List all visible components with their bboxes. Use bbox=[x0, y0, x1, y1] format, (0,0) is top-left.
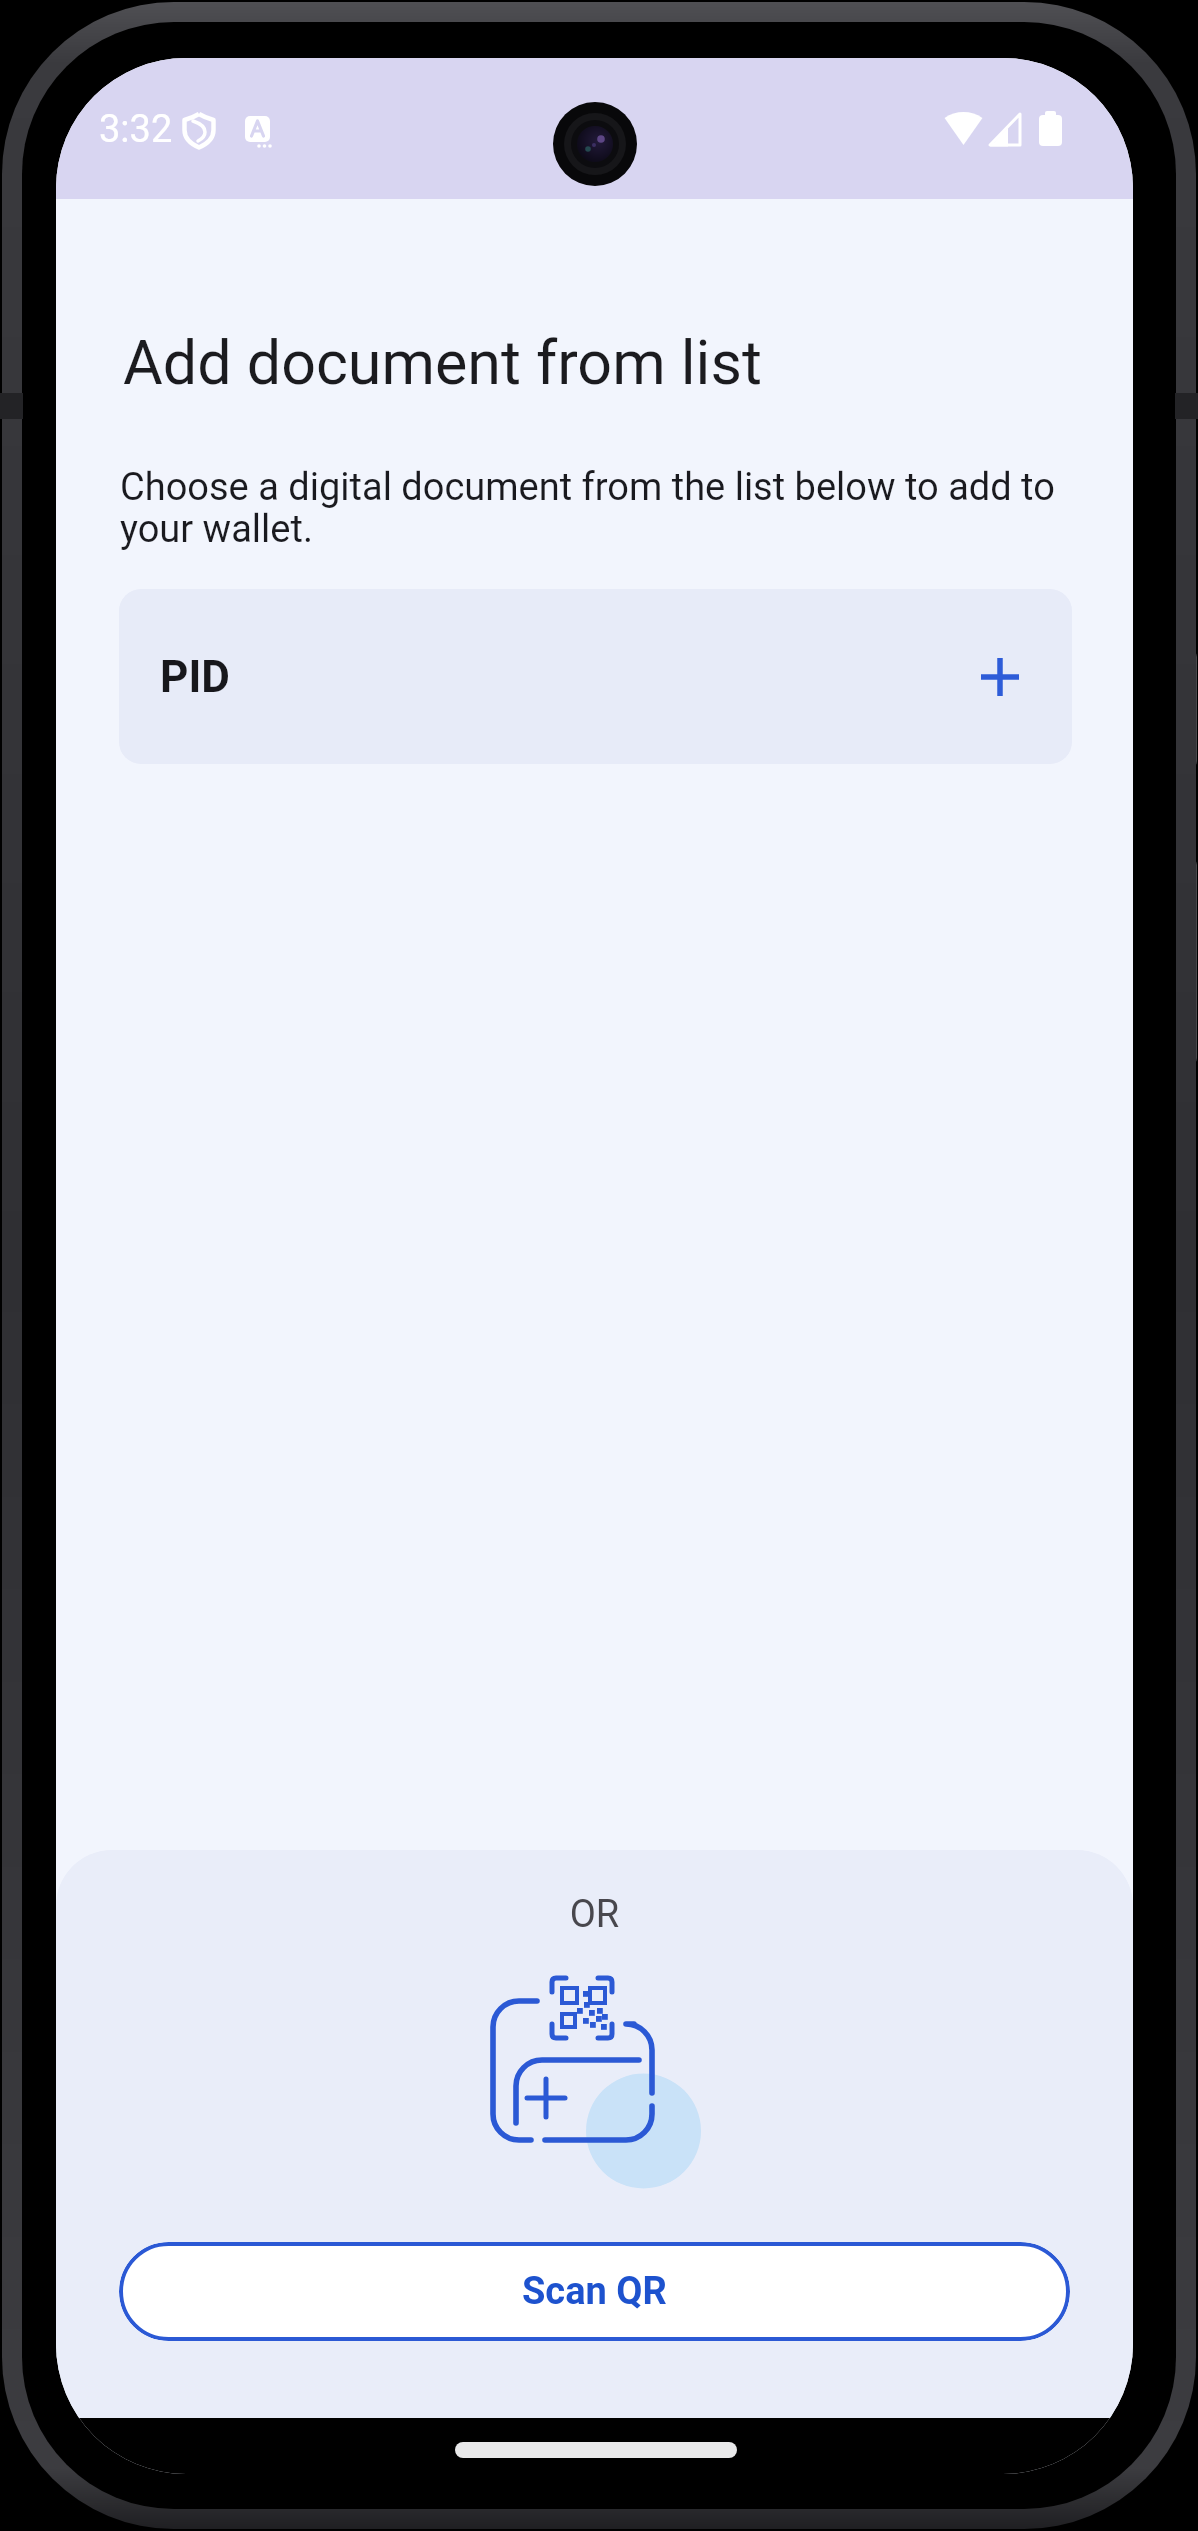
staticText: 3:32 bbox=[99, 107, 173, 152]
staticText: PID bbox=[160, 651, 230, 703]
button[interactable]: Scan QR bbox=[119, 2242, 1070, 2341]
staticText: Choose a digital document from the list … bbox=[120, 465, 1078, 552]
button[interactable]: PID bbox=[119, 589, 1072, 764]
staticText: Scan QR bbox=[522, 2269, 667, 2314]
staticText: OR bbox=[56, 1892, 1133, 1937]
staticText: Add document from list bbox=[123, 327, 762, 398]
